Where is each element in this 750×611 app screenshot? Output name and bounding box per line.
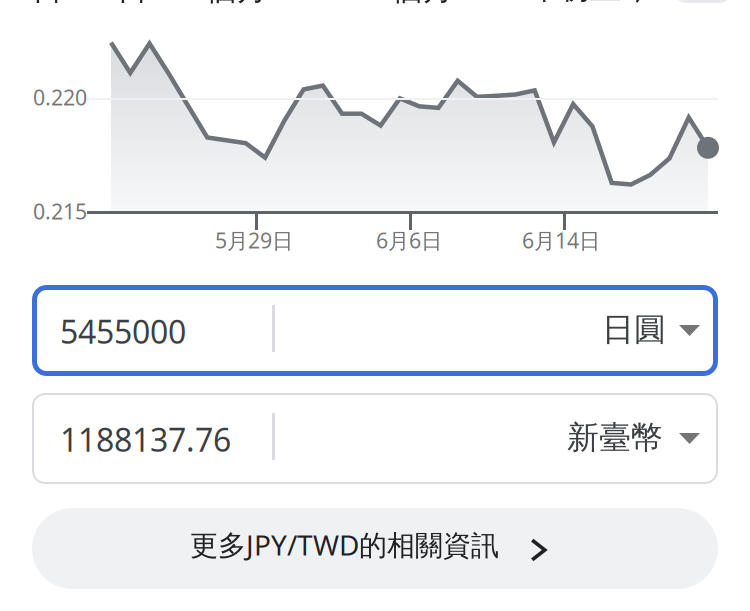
staticText: 5月29日 (215, 226, 293, 254)
staticText: 5日 (99, 0, 148, 8)
staticText: 1188137.76 (60, 418, 231, 460)
staticText: 更多JPY/TWD的相關資訊 (190, 526, 499, 563)
button[interactable]: 5455000 (32, 285, 718, 376)
button[interactable]: 更多JPY/TWD的相關資訊 (32, 508, 718, 589)
staticText: 0.220 (33, 83, 87, 111)
staticText: 日圓 (602, 310, 666, 349)
staticText: 5455000 (60, 310, 186, 352)
staticText: 6月6日 (376, 226, 442, 254)
staticText: 1日 (14, 0, 63, 8)
staticText: 6個月 (374, 0, 454, 8)
staticText: 新臺幣 (567, 418, 663, 457)
button[interactable]: 1188137.76 (32, 393, 718, 484)
staticText: 0.215 (33, 197, 87, 225)
staticText: 年初至今 (528, 0, 652, 7)
staticText: 6月14日 (522, 226, 600, 254)
staticText: 1個月 (188, 0, 268, 8)
